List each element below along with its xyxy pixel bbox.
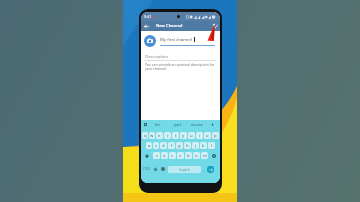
staticText: y [182, 133, 185, 139]
button[interactable]: Backspace [209, 152, 219, 159]
staticText: New Channel [156, 23, 183, 29]
staticText: i [199, 133, 201, 139]
button[interactable]: z [153, 152, 160, 159]
button[interactable]: r [164, 132, 171, 139]
staticText: x [163, 153, 166, 159]
staticText: u [190, 133, 193, 139]
button[interactable]: q [142, 132, 148, 139]
button[interactable]: mouse [190, 120, 204, 129]
staticText: ?123 [143, 167, 150, 171]
staticText: English [179, 168, 190, 172]
staticText: e [158, 133, 161, 139]
button[interactable]: w [149, 132, 155, 139]
button[interactable]: g [176, 142, 183, 149]
button[interactable]: y [180, 132, 187, 139]
button[interactable]: c [169, 152, 176, 159]
staticText: h [186, 143, 189, 149]
staticText: f [171, 143, 173, 149]
staticText: part [174, 122, 182, 127]
button[interactable]: a [146, 142, 152, 149]
staticText: j [195, 143, 197, 149]
button[interactable]: j [192, 142, 199, 149]
staticText: c [171, 153, 174, 159]
button[interactable]: s [153, 142, 159, 149]
button[interactable]: u [188, 132, 195, 139]
staticText: a [148, 143, 151, 149]
button[interactable]: Shift [142, 152, 152, 159]
staticText: s [155, 143, 158, 149]
staticText: z [156, 153, 158, 159]
staticText: q [144, 133, 147, 139]
button[interactable]: part [171, 120, 185, 129]
staticText: l [211, 143, 213, 149]
staticText: t [175, 133, 177, 139]
button[interactable]: m [201, 152, 208, 159]
staticText: n [195, 153, 198, 159]
staticText: for [155, 122, 161, 127]
button[interactable]: h [184, 142, 191, 149]
button[interactable]: Back [142, 21, 151, 31]
staticText: . [203, 167, 204, 172]
button[interactable]: n [193, 152, 200, 159]
staticText: d [162, 143, 165, 149]
staticText: g [178, 143, 181, 149]
button[interactable]: for [151, 120, 165, 129]
button[interactable]: p [212, 132, 219, 139]
button[interactable]: English [168, 166, 201, 173]
staticText: k [202, 143, 205, 149]
staticText: 3:41 [144, 14, 152, 19]
staticText: o [206, 133, 209, 139]
button[interactable]: o [204, 132, 211, 139]
button[interactable]: Emoji [160, 165, 166, 173]
button[interactable]: e [156, 132, 163, 139]
button[interactable]: Enter [207, 166, 214, 173]
staticText: r [167, 133, 169, 139]
staticText: b [187, 153, 190, 159]
button[interactable]: l [208, 142, 215, 149]
staticText: m [203, 153, 207, 159]
staticText: v [179, 153, 182, 159]
button[interactable]: x [161, 152, 168, 159]
button[interactable]: v [177, 152, 184, 159]
button[interactable]: i [196, 132, 203, 139]
button[interactable]: Voice input [209, 120, 215, 129]
staticText: My first channel [160, 36, 192, 42]
button[interactable]: b [185, 152, 192, 159]
button[interactable]: Clipboard [142, 120, 148, 129]
button[interactable]: Settings [152, 165, 158, 173]
button[interactable]: Done [211, 21, 220, 31]
button[interactable]: d [160, 142, 167, 149]
button[interactable]: k [200, 142, 207, 149]
button[interactable]: f [168, 142, 175, 149]
staticText: w [150, 133, 154, 139]
button[interactable]: ?123 [143, 165, 150, 173]
button[interactable]: Set channel photo [144, 35, 156, 47]
staticText: You can provide an optional description … [145, 62, 216, 71]
staticText: Description [145, 53, 169, 59]
staticText: p [214, 133, 217, 139]
staticText: mouse [191, 122, 203, 127]
button[interactable]: t [172, 132, 179, 139]
